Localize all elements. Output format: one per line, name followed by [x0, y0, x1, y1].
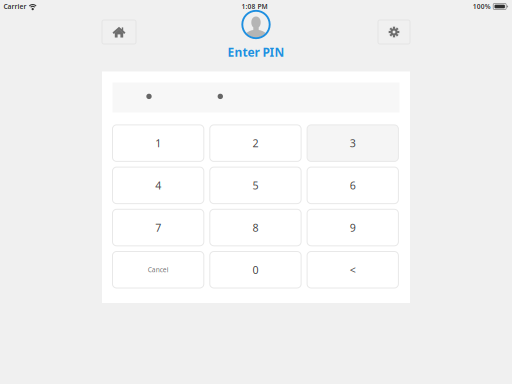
staticText: 7: [155, 220, 161, 235]
staticText: 9: [350, 220, 356, 235]
staticText: 8: [252, 220, 258, 235]
staticText: Enter PIN: [227, 44, 284, 60]
button[interactable]: 6: [307, 167, 398, 204]
staticText: <: [350, 263, 356, 277]
staticText: 4: [155, 178, 161, 192]
button[interactable]: 7: [112, 209, 204, 246]
button[interactable]: 9: [307, 209, 398, 246]
button[interactable]: 3: [307, 125, 398, 161]
button[interactable]: 8: [210, 209, 301, 246]
button[interactable]: 4: [112, 167, 204, 204]
button[interactable]: Settings: [378, 20, 410, 44]
button[interactable]: 2: [210, 125, 301, 161]
button[interactable]: 1: [112, 125, 204, 161]
button[interactable]: Cancel: [112, 251, 204, 288]
staticText: 2: [252, 136, 258, 150]
button[interactable]: Home: [102, 20, 136, 44]
staticText: Cancel: [148, 265, 169, 274]
staticText: 0: [252, 263, 258, 277]
staticText: 6: [350, 178, 356, 192]
staticText: 1:08 PM: [241, 2, 267, 11]
staticText: 1: [155, 136, 161, 150]
staticText: 3: [350, 136, 356, 150]
button[interactable]: Account: [241, 9, 271, 39]
staticText: 100%: [473, 2, 491, 11]
button[interactable]: 0: [210, 251, 301, 288]
button[interactable]: 5: [210, 167, 301, 204]
staticText: 5: [252, 178, 258, 192]
button[interactable]: <: [307, 251, 398, 288]
staticText: Carrier: [3, 2, 26, 11]
